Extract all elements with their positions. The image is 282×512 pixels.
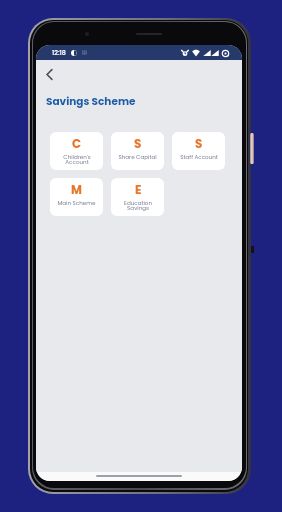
button[interactable]: Power xyxy=(250,133,254,164)
button[interactable]: S xyxy=(172,132,225,170)
staticText: M xyxy=(71,182,82,199)
staticText: Education Savings xyxy=(124,199,152,212)
button[interactable]: Back xyxy=(38,63,60,85)
staticText: C xyxy=(72,136,82,153)
button[interactable]: Home xyxy=(96,475,182,477)
staticText: Children's Account xyxy=(63,153,91,166)
staticText: Main Scheme xyxy=(57,199,96,207)
button[interactable]: E xyxy=(111,178,164,216)
button[interactable]: C xyxy=(50,132,103,170)
staticText: Staff Account xyxy=(180,153,218,161)
button[interactable]: M xyxy=(50,178,103,216)
staticText: S xyxy=(134,136,142,153)
staticText: S xyxy=(195,136,203,153)
staticText: 12:18 xyxy=(52,48,66,57)
button[interactable]: S xyxy=(111,132,164,170)
staticText: Share Capital xyxy=(118,153,157,161)
staticText: E xyxy=(135,182,142,199)
staticText: Savings Scheme xyxy=(46,94,136,109)
